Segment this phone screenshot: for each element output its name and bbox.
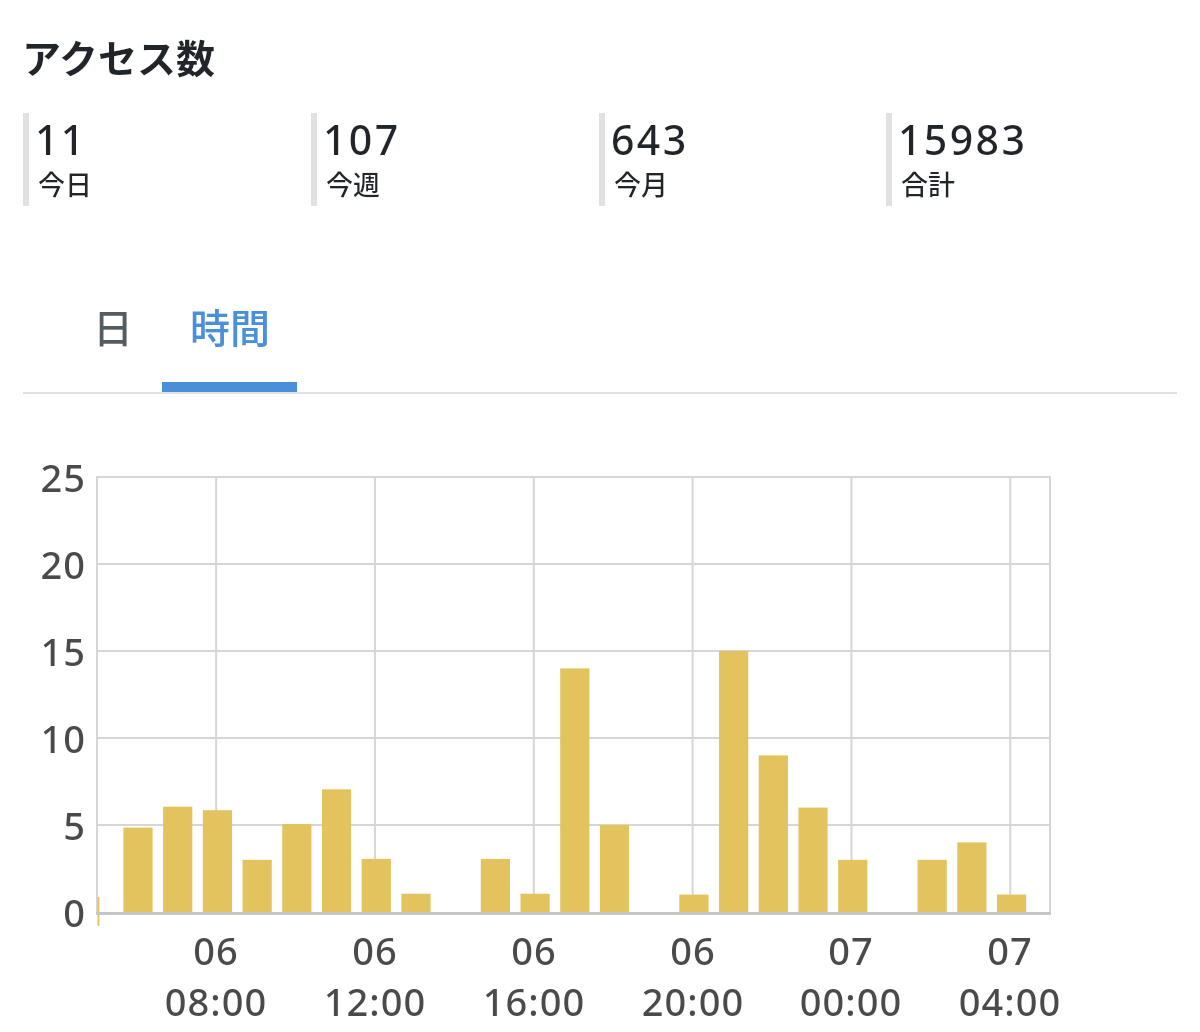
staticText: 合計 [901, 164, 955, 203]
button[interactable]: 15983 [886, 113, 1174, 206]
staticText: 04:00 [900, 975, 1120, 1027]
staticText: 06 [424, 924, 644, 976]
staticText: 15983 [898, 111, 1028, 167]
staticText: 06 [265, 924, 485, 976]
staticText: 11 [35, 111, 87, 167]
staticText: 643 [611, 111, 689, 167]
staticText: 20 [4, 538, 86, 590]
staticText: 08:00 [106, 975, 326, 1027]
staticText: 5 [4, 799, 86, 851]
button[interactable]: 11 [23, 113, 311, 206]
button[interactable]: 時間 [162, 297, 297, 386]
button[interactable]: 日 [64, 297, 162, 386]
staticText: 0 [4, 886, 86, 938]
staticText: 15 [4, 625, 86, 677]
staticText: 06 [106, 924, 326, 976]
staticText: 07 [900, 924, 1120, 976]
staticText: 20:00 [583, 975, 803, 1027]
staticText: アクセス数 [22, 28, 216, 84]
button[interactable]: 643 [599, 113, 887, 206]
staticText: 10 [4, 712, 86, 764]
staticText: 日 [93, 297, 133, 355]
staticText: 16:00 [424, 975, 644, 1027]
staticText: 00:00 [741, 975, 961, 1027]
staticText: 107 [323, 111, 401, 167]
staticText: 06 [583, 924, 803, 976]
staticText: 12:00 [265, 975, 485, 1027]
button[interactable]: 107 [311, 113, 599, 206]
staticText: 25 [4, 451, 86, 503]
staticText: 今週 [326, 164, 380, 203]
staticText: 今月 [614, 164, 668, 203]
other: Hourly access bar chart [0, 0, 1200, 1032]
staticText: 時間 [190, 297, 270, 355]
staticText: 07 [741, 924, 961, 976]
staticText: 今日 [38, 164, 92, 203]
